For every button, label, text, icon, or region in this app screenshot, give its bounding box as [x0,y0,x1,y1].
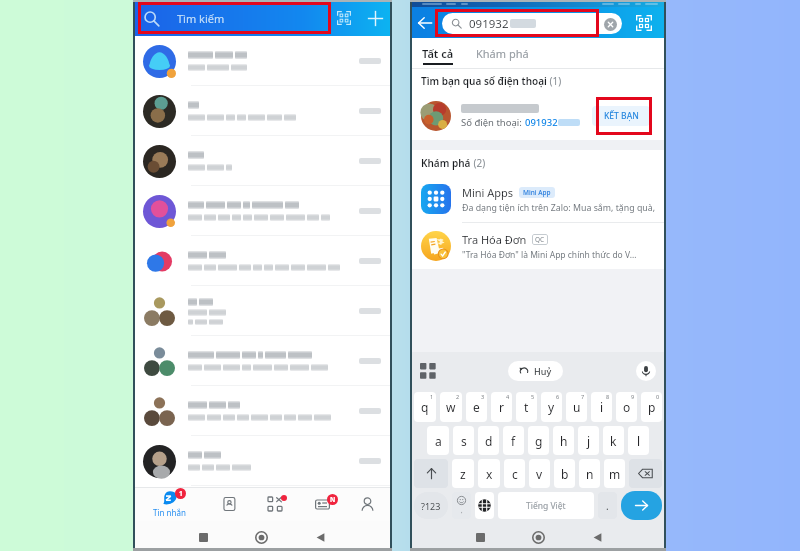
button[interactable]: KẾT BẠN [592,106,650,126]
staticText: KẾT BẠN [604,110,639,122]
button[interactable] [133,86,392,136]
staticText: , [461,507,463,515]
button[interactable] [133,36,392,86]
staticText: 3 [481,393,485,400]
button[interactable] [133,236,392,286]
button[interactable]: 1 [145,487,193,521]
button[interactable]: Mini Apps [410,176,666,222]
staticText: 5 [531,393,535,400]
button[interactable]: g [528,426,549,455]
button[interactable]: Home [527,526,550,549]
staticText: v [536,466,543,482]
button[interactable]: r [491,392,512,422]
button[interactable]: b [554,459,575,488]
button[interactable]: 091932 [442,13,622,34]
button[interactable]: q [414,392,436,422]
staticText: h [560,433,568,449]
staticText: o [623,399,631,415]
button[interactable]: v [529,459,550,488]
staticText: Tiếng Việt [526,500,566,512]
button[interactable]: l [628,426,649,455]
staticText: (1) [547,74,562,88]
button[interactable]: o [616,392,637,422]
button[interactable]: Xoá [600,14,620,34]
button[interactable]: . [598,492,617,519]
staticText: c [512,466,518,482]
button[interactable]: d [478,426,499,455]
staticText: z [460,466,466,482]
button[interactable]: a [427,426,449,455]
staticText: 9 [631,393,635,400]
button[interactable]: Tiếng Việt [498,492,594,519]
staticText: g [535,433,543,449]
button[interactable]: Danh bạ [207,487,251,521]
staticText: Khám phá [476,46,529,61]
button[interactable]: x [478,459,500,488]
button[interactable]: Tra Hóa Đơn [410,223,666,269]
button[interactable]: Back [586,526,609,549]
button[interactable]: Cá nhân [345,487,389,521]
button[interactable]: Gửi [621,491,662,520]
button[interactable]: Quét mã QR [329,0,358,36]
button[interactable]: h [553,426,574,455]
staticText: 091932 [525,116,558,129]
staticText: Khám phá [421,156,471,170]
button[interactable]: Quay lại [410,8,440,38]
button[interactable]: Tìm kiếm [133,0,329,36]
staticText: 0 [656,393,660,400]
button[interactable]: Số điện thoại: [410,92,666,140]
staticText: 7 [581,393,585,400]
button[interactable]: y [541,392,562,422]
button[interactable]: Huỷ [508,361,563,381]
button[interactable]: z [452,459,474,488]
staticText: w [446,399,456,415]
staticText: Tra Hóa Đơn [462,232,527,247]
button[interactable]: Home [250,526,273,549]
button[interactable]: Bảng chọn [420,363,436,379]
button[interactable] [133,286,392,336]
staticText: r [499,399,504,415]
button[interactable]: Micro [636,361,656,381]
staticText: k [610,433,617,449]
button[interactable]: m [604,459,625,488]
button[interactable]: Quét mã QR [622,8,666,38]
button[interactable]: Recent apps [469,526,492,549]
button[interactable]: Khám phá [466,38,538,68]
staticText: l [637,433,641,449]
button[interactable]: f [503,426,524,455]
button[interactable]: s [453,426,474,455]
button[interactable]: Thêm [358,0,392,36]
button[interactable]: k [603,426,624,455]
button[interactable] [133,436,392,486]
staticText: Tìm kiếm [177,11,225,26]
button[interactable]: Khám phá [253,487,297,521]
button[interactable]: e [466,392,487,422]
button[interactable] [133,186,392,236]
button[interactable] [133,336,392,386]
staticText: 2 [456,393,460,400]
button[interactable]: c [504,459,525,488]
button[interactable]: ?123 [414,492,448,519]
button[interactable]: Shift [414,459,448,488]
staticText: q [421,399,429,415]
button[interactable]: Emoji [452,492,471,519]
staticText: 1 [179,489,183,498]
button[interactable]: i [591,392,612,422]
button[interactable]: t [516,392,537,422]
button[interactable]: Recent apps [192,526,215,549]
button[interactable] [133,386,392,436]
button[interactable]: Back [309,526,332,549]
button[interactable]: Xoá [629,459,662,488]
staticText: 4 [506,393,510,400]
button[interactable]: Đổi ngôn ngữ [475,492,494,519]
button[interactable]: u [566,392,587,422]
button[interactable]: j [578,426,599,455]
button[interactable]: n [579,459,600,488]
staticText: f [511,433,516,449]
button[interactable]: Tất cả [410,38,466,68]
staticText: i [600,399,604,415]
button[interactable]: Nhật ký [300,487,344,521]
button[interactable]: p [641,392,662,422]
button[interactable] [133,136,392,186]
button[interactable]: w [440,392,462,422]
